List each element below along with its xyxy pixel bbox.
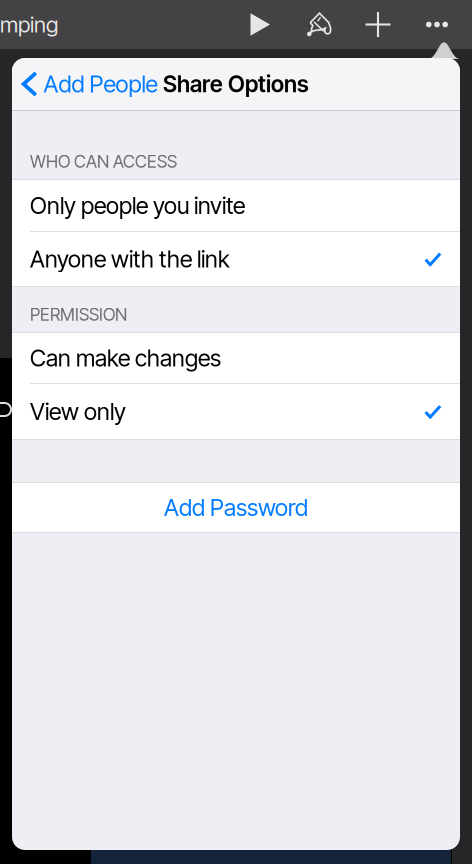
button[interactable]: View only xyxy=(12,384,460,439)
staticText: PERMISSION xyxy=(30,304,127,325)
staticText: View only xyxy=(30,397,126,426)
staticText: Add People xyxy=(43,70,157,98)
staticText: WHO CAN ACCESS xyxy=(30,151,177,172)
staticText: Can make changes xyxy=(30,344,221,372)
staticText: Anyone with the link xyxy=(30,245,230,273)
staticText: Add Password xyxy=(164,493,308,522)
button[interactable]: Only people you invite xyxy=(12,180,460,231)
button[interactable]: More xyxy=(407,0,466,49)
button[interactable]: Add People xyxy=(12,58,166,110)
staticText: Share Options xyxy=(163,70,309,98)
button[interactable]: Markup xyxy=(289,0,348,49)
button[interactable]: Anyone with the link xyxy=(12,232,460,286)
button[interactable]: Add xyxy=(348,0,407,49)
staticText: mping xyxy=(0,11,58,38)
staticText: Only people you invite xyxy=(30,191,245,220)
button[interactable]: Can make changes xyxy=(12,333,460,383)
button[interactable]: Add Password xyxy=(12,483,460,532)
button[interactable]: Play xyxy=(230,0,289,49)
